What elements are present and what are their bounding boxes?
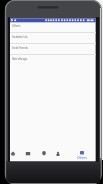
button[interactable] [21,150,34,161]
button[interactable]: Others [73,150,90,161]
staticText: Others [12,24,21,28]
staticText: Rate this app [12,57,28,61]
button[interactable]: Invite Friends [10,44,96,54]
staticText: Invitation List [12,35,28,39]
staticText: Invite Friends [12,46,28,50]
button[interactable] [51,150,64,161]
button[interactable]: Rate this app [10,55,96,65]
staticText: Others [77,155,87,159]
button[interactable]: Invitation List [10,33,96,43]
button[interactable] [6,150,19,161]
button[interactable] [37,150,50,161]
